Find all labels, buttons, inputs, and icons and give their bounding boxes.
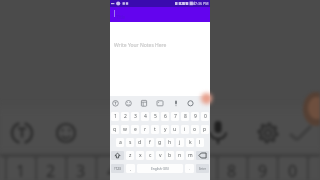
- button[interactable]: x: [136, 151, 144, 160]
- button[interactable]: ?123: [111, 164, 124, 173]
- button[interactable]: l: [196, 138, 204, 147]
- staticText: 8: [227, 160, 237, 180]
- button[interactable]: .: [185, 164, 194, 173]
- button[interactable]: 3: [131, 112, 139, 121]
- staticText: 4: [107, 160, 117, 180]
- staticText: h: [168, 139, 172, 146]
- button[interactable]: f: [146, 138, 154, 147]
- staticText: Enter: [199, 167, 207, 171]
- staticText: j: [179, 139, 181, 146]
- staticText: 6: [164, 113, 167, 120]
- button[interactable]: y: [161, 125, 169, 134]
- button[interactable]: 4: [141, 112, 149, 121]
- staticText: d: [138, 139, 142, 146]
- staticText: English (US): [151, 167, 169, 171]
- button[interactable]: Title: [110, 7, 210, 22]
- button[interactable]: 0: [201, 112, 209, 121]
- staticText: 6: [167, 160, 177, 180]
- staticText: 3: [76, 160, 86, 180]
- staticText: 0: [288, 160, 298, 180]
- button[interactable]: r: [141, 125, 149, 134]
- button[interactable]: a: [116, 138, 124, 147]
- button[interactable]: 6: [161, 112, 169, 121]
- button[interactable]: 1: [111, 112, 119, 121]
- button[interactable]: 5: [151, 112, 159, 121]
- staticText: Title: [116, 14, 126, 20]
- button[interactable]: o: [191, 125, 199, 134]
- staticText: u: [173, 126, 177, 133]
- staticText: 7:36 PM: [195, 1, 209, 6]
- staticText: s: [129, 139, 132, 146]
- staticText: z: [129, 152, 132, 159]
- button[interactable]: u: [171, 125, 179, 134]
- staticText: ,: [130, 166, 132, 171]
- button[interactable]: w: [121, 125, 129, 134]
- staticText: ?123: [114, 167, 121, 171]
- staticText: t: [154, 126, 156, 133]
- staticText: 0: [204, 113, 207, 120]
- staticText: k: [189, 139, 192, 146]
- staticText: q: [113, 126, 117, 133]
- staticText: 9: [258, 160, 268, 180]
- staticText: o: [193, 126, 197, 133]
- staticText: b: [168, 152, 172, 159]
- staticText: 7: [174, 113, 177, 120]
- button[interactable]: b: [166, 151, 174, 160]
- staticText: 1: [114, 113, 117, 120]
- button[interactable]: 7: [171, 112, 179, 121]
- button[interactable]: ,: [126, 164, 135, 173]
- button[interactable]: English (US): [137, 164, 183, 173]
- staticText: 2: [124, 113, 127, 120]
- button[interactable]: h: [166, 138, 174, 147]
- button[interactable]: q: [111, 125, 119, 134]
- staticText: p: [203, 126, 207, 133]
- button[interactable]: n: [176, 151, 184, 160]
- button[interactable]: i: [181, 125, 189, 134]
- button[interactable]: c: [146, 151, 154, 160]
- button[interactable]: 8: [181, 112, 189, 121]
- staticText: y: [164, 126, 167, 133]
- button[interactable]: k: [186, 138, 194, 147]
- staticText: e: [134, 126, 137, 133]
- staticText: f: [149, 139, 151, 146]
- button[interactable]: s: [126, 138, 134, 147]
- staticText: Write Your Notes Here: [114, 42, 167, 49]
- staticText: v: [159, 152, 162, 159]
- staticText: 3: [134, 113, 137, 120]
- button[interactable]: 2: [121, 112, 129, 121]
- staticText: r: [144, 126, 147, 133]
- staticText: 9: [194, 113, 197, 120]
- staticText: 25%: [181, 1, 189, 6]
- staticText: 4: [144, 113, 147, 120]
- staticText: g: [158, 139, 162, 146]
- button[interactable]: z: [126, 151, 134, 160]
- staticText: n: [178, 152, 182, 159]
- staticText: x: [139, 152, 142, 159]
- staticText: 5: [154, 113, 157, 120]
- button[interactable]: d: [136, 138, 144, 147]
- button[interactable]: Shift: [111, 151, 124, 160]
- button[interactable]: Write Your Notes Here: [110, 22, 210, 96]
- button[interactable]: v: [156, 151, 164, 160]
- button[interactable]: g: [156, 138, 164, 147]
- button[interactable]: Backspace: [196, 151, 209, 160]
- staticText: 2: [46, 160, 56, 180]
- staticText: 7: [197, 160, 207, 180]
- staticText: 5: [137, 160, 147, 180]
- staticText: m: [188, 152, 193, 159]
- button[interactable]: e: [131, 125, 139, 134]
- staticText: l: [199, 139, 201, 146]
- button[interactable]: p: [201, 125, 209, 134]
- button[interactable]: j: [176, 138, 184, 147]
- staticText: 1: [16, 160, 26, 180]
- staticText: i: [184, 126, 186, 133]
- button[interactable]: 9: [191, 112, 199, 121]
- button[interactable]: m: [186, 151, 194, 160]
- staticText: w: [123, 126, 127, 133]
- staticText: c: [149, 152, 152, 159]
- button[interactable]: t: [151, 125, 159, 134]
- staticText: 8: [184, 113, 187, 120]
- button[interactable]: Enter: [196, 164, 209, 173]
- staticText: a: [119, 139, 122, 146]
- staticText: .: [189, 166, 191, 171]
